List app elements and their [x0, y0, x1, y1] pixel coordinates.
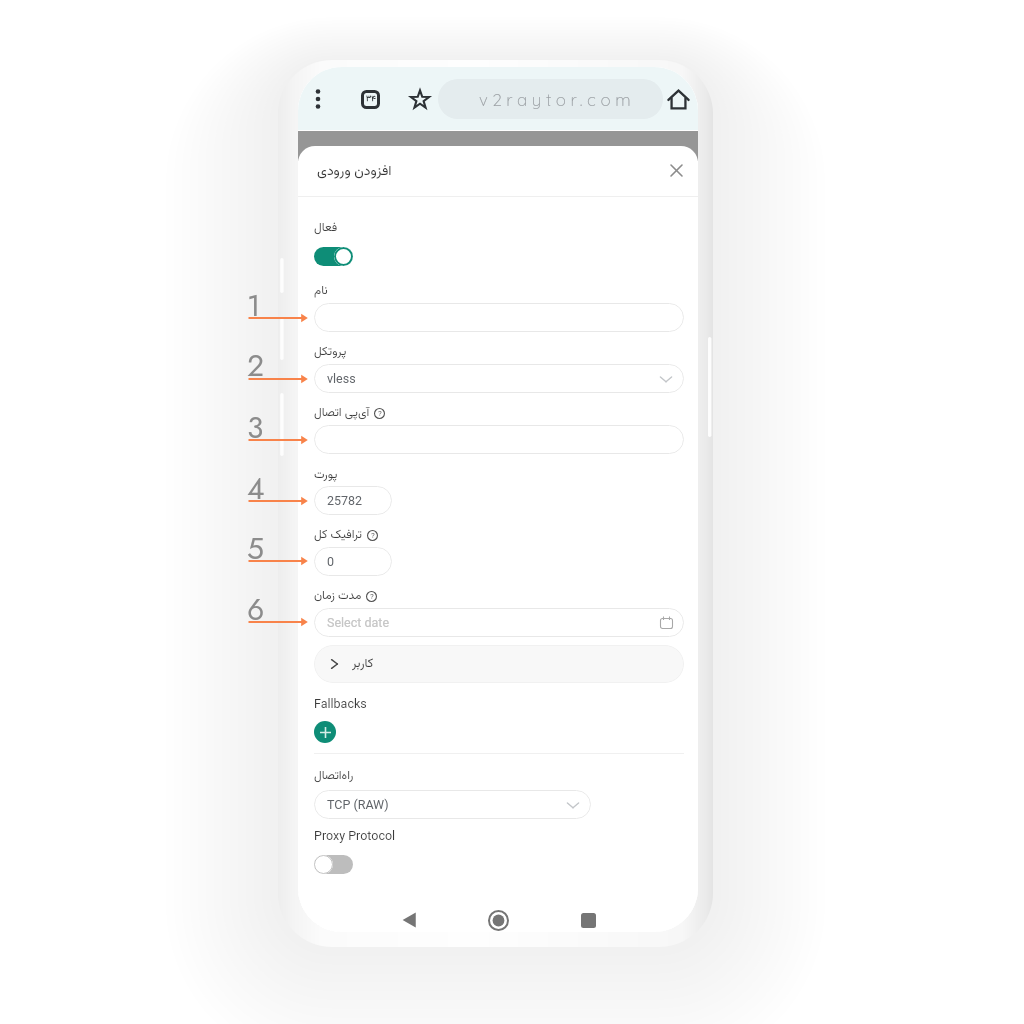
button[interactable]: کاربر: [314, 645, 684, 683]
button[interactable]: 0: [314, 547, 392, 576]
staticText: کاربر: [352, 654, 374, 674]
staticText: v2raytor.com: [479, 89, 636, 110]
button[interactable]: Open tabs: [355, 84, 385, 114]
staticText: TCP (RAW): [327, 797, 389, 812]
button[interactable]: Add fallback: [314, 721, 336, 743]
staticText: مدت زمان: [314, 587, 362, 606]
button[interactable]: vless: [314, 364, 684, 393]
button[interactable]: TCP (RAW): [314, 790, 591, 819]
staticText: 25782: [327, 493, 363, 508]
button[interactable]: Bookmark: [405, 84, 435, 114]
staticText: vless: [327, 371, 356, 386]
staticText: افزودن ورودی: [317, 161, 392, 183]
staticText: ?: [371, 531, 375, 540]
staticText: پروتکل: [314, 343, 347, 362]
button[interactable]: Home: [479, 901, 517, 932]
button[interactable]: v2raytor.com: [438, 79, 663, 119]
button[interactable]: Back: [390, 901, 428, 932]
staticText: ۳۴: [366, 93, 376, 106]
staticText: 3: [247, 406, 264, 449]
button[interactable]: Proxy Protocol toggle: [314, 854, 353, 874]
button[interactable]: [314, 425, 684, 454]
staticText: نام: [314, 282, 328, 301]
button[interactable]: [314, 303, 684, 332]
button[interactable]: Enabled toggle: [314, 246, 353, 266]
staticText: 2: [247, 344, 265, 387]
staticText: ?: [370, 592, 374, 601]
button[interactable]: More options: [303, 84, 333, 114]
staticText: پورت: [314, 466, 338, 485]
staticText: 0: [327, 554, 335, 569]
staticText: Fallbacks: [314, 696, 367, 711]
staticText: 1: [247, 284, 261, 327]
staticText: آی‌پی اتصال: [314, 404, 370, 423]
staticText: ترافیک کل: [314, 526, 363, 545]
button[interactable]: Close: [662, 156, 691, 185]
staticText: Select date: [327, 615, 390, 630]
button[interactable]: Select date: [314, 608, 684, 637]
button[interactable]: Recent apps: [569, 901, 607, 932]
staticText: 4: [247, 467, 265, 510]
staticText: 6: [247, 588, 265, 631]
button[interactable]: 25782: [314, 486, 392, 515]
button[interactable]: Home: [663, 84, 693, 114]
staticText: ?: [378, 409, 382, 418]
staticText: 5: [247, 527, 264, 570]
staticText: Proxy Protocol: [314, 828, 396, 843]
staticText: فعال: [314, 219, 338, 238]
staticText: راه‌اتصال: [314, 767, 354, 786]
